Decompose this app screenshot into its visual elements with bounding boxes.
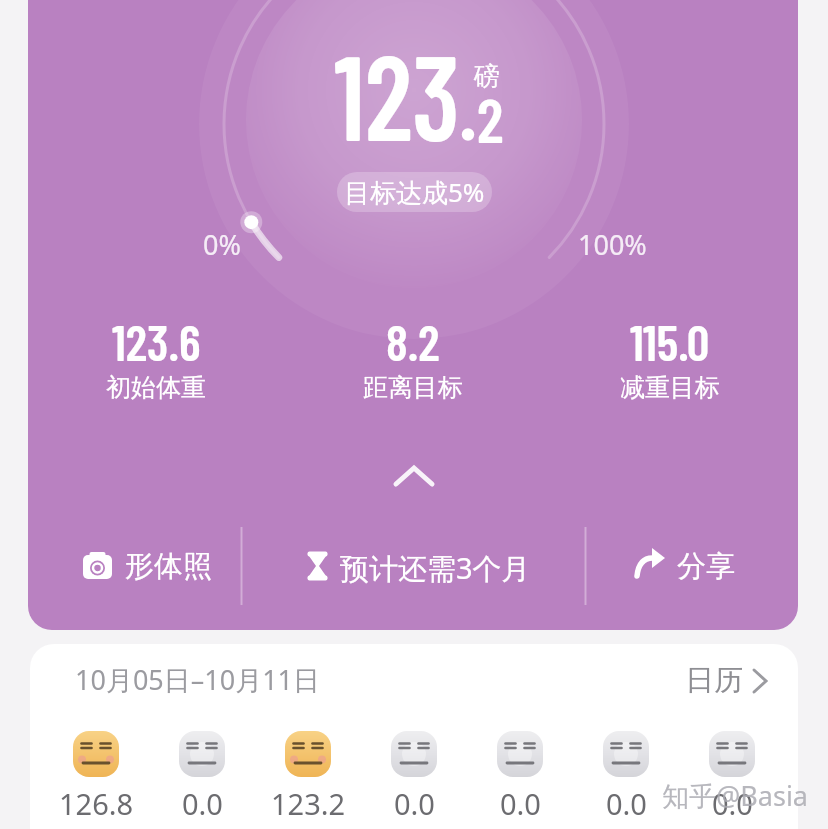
staticText: 2: [477, 81, 504, 155]
staticText: 分享: [677, 548, 735, 584]
staticText: 形体照: [125, 548, 212, 584]
staticText: 0.0: [394, 784, 435, 820]
staticText: 日历: [685, 662, 743, 699]
staticText: 123: [334, 21, 460, 165]
button[interactable]: 0.0: [149, 784, 255, 820]
button[interactable]: 0.0: [361, 784, 467, 820]
button[interactable]: 0.0: [467, 784, 573, 820]
staticText: 初始体重: [106, 372, 206, 403]
button[interactable]: 126.8: [43, 784, 149, 820]
staticText: 目标达成5%: [344, 174, 485, 210]
staticText: 磅: [474, 60, 500, 93]
staticText: 0.0: [500, 784, 541, 820]
staticText: 8.2: [386, 311, 440, 371]
button[interactable]: 目标达成5%: [337, 172, 492, 212]
staticText: 减重目标: [620, 372, 720, 403]
staticText: 100%: [578, 226, 647, 260]
staticText: 123.6: [112, 311, 201, 371]
button[interactable]: 123.2: [255, 784, 361, 820]
staticText: 126.8: [59, 784, 134, 820]
button[interactable]: 日历: [633, 661, 743, 699]
staticText: 10月05日–10月11日: [75, 661, 321, 698]
button[interactable]: 0.0: [679, 784, 785, 820]
staticText: 0.0: [182, 784, 223, 820]
button[interactable]: 预计还需3个月: [296, 548, 531, 584]
staticText: 知乎@Basia: [662, 777, 809, 814]
button[interactable]: 10月05日–10月11日: [75, 660, 321, 698]
staticText: 123.2: [271, 784, 346, 820]
button[interactable]: 形体照: [83, 548, 212, 584]
button[interactable]: 分享: [634, 548, 735, 584]
staticText: 115.0: [630, 311, 710, 371]
staticText: 0.0: [606, 784, 647, 820]
staticText: 0%: [203, 226, 241, 260]
staticText: 预计还需3个月: [340, 548, 531, 584]
staticText: 0.0: [712, 784, 753, 820]
button[interactable]: 0.0: [573, 784, 679, 820]
staticText: 距离目标: [363, 372, 463, 403]
